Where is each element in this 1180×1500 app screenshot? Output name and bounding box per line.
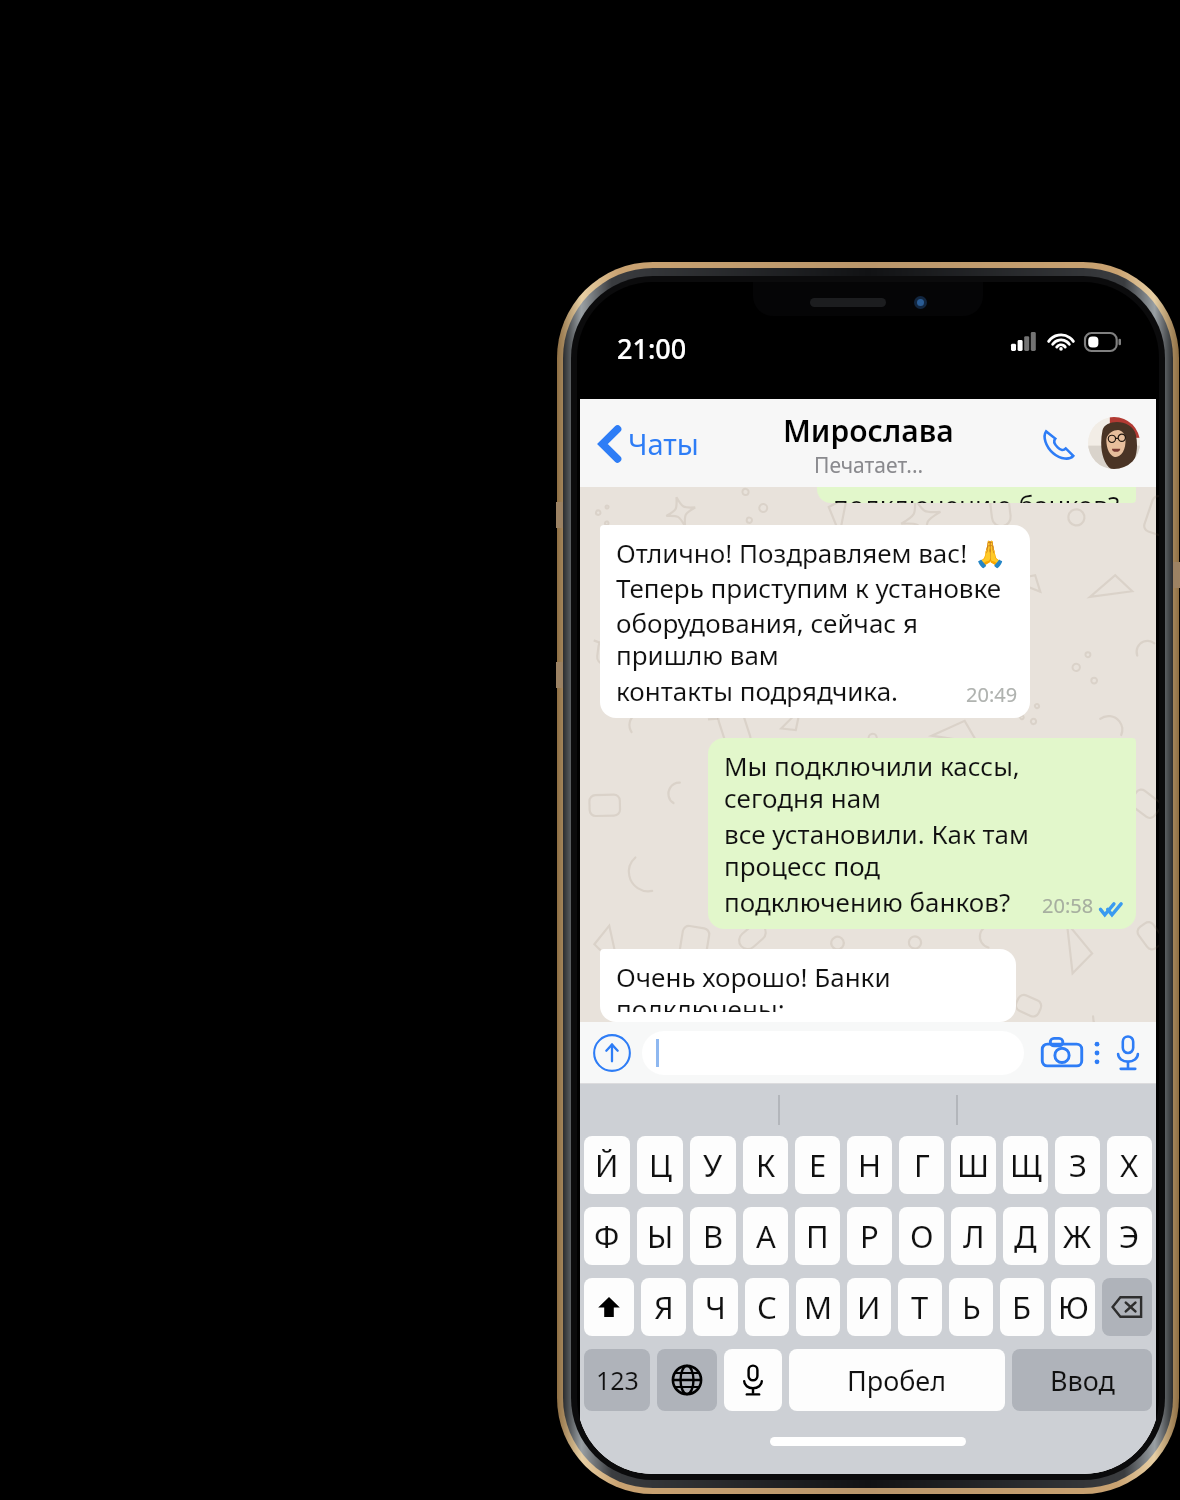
button[interactable]: Voice message	[1112, 1032, 1144, 1074]
button[interactable]: Чаты	[594, 416, 705, 471]
staticText: 123	[596, 1363, 639, 1397]
button[interactable]: Р	[847, 1207, 892, 1265]
staticText: Ввод	[1050, 1362, 1115, 1399]
button[interactable]: Л	[951, 1207, 996, 1265]
staticText: Е	[809, 1144, 827, 1186]
button[interactable]: Т	[898, 1278, 942, 1336]
staticText: Ш	[957, 1144, 990, 1186]
staticText: 20:49	[966, 681, 1018, 708]
button[interactable]: М	[796, 1278, 840, 1336]
button[interactable]: Contact avatar	[1088, 417, 1140, 469]
staticText: Т	[911, 1286, 929, 1328]
staticText: Ф	[594, 1215, 620, 1257]
button[interactable]: подключению банков?	[817, 487, 1136, 503]
button[interactable]: Мы подключили кассы, сегодня нам	[708, 738, 1136, 929]
staticText: Г	[914, 1144, 930, 1186]
staticText: Н	[858, 1144, 882, 1186]
staticText: Очень хорошо! Банки подключены:	[616, 959, 1004, 1012]
button[interactable]: Г	[899, 1136, 944, 1194]
button[interactable]: Ы	[637, 1207, 683, 1265]
staticText: Ж	[1063, 1215, 1092, 1257]
staticText: Б	[1012, 1286, 1032, 1328]
staticText: Ь	[962, 1286, 981, 1328]
button[interactable]: З	[1055, 1136, 1100, 1194]
staticText: Ы	[647, 1215, 674, 1257]
staticText: Щ	[1010, 1144, 1042, 1186]
staticText: Чаты	[628, 424, 699, 463]
button[interactable]: Н	[847, 1136, 892, 1194]
staticText: все установили. Как там процесс под	[724, 816, 1124, 884]
staticText: Пробел	[847, 1362, 947, 1399]
staticText: Й	[595, 1144, 619, 1186]
button[interactable]: Б	[1000, 1278, 1044, 1336]
button[interactable]: Ш	[951, 1136, 996, 1194]
button[interactable]: В	[690, 1207, 736, 1265]
button[interactable]: Пробел	[789, 1349, 1005, 1411]
button[interactable]: Й	[584, 1136, 630, 1194]
button[interactable]: Ч	[693, 1278, 738, 1336]
staticText: оборудования, сейчас я пришлю вам	[616, 605, 1018, 673]
staticText: Л	[963, 1215, 985, 1257]
button[interactable]: Backspace	[1102, 1278, 1152, 1336]
staticText: Мирослава	[783, 410, 954, 451]
button[interactable]: Э	[1107, 1207, 1152, 1265]
button[interactable]: К	[743, 1136, 788, 1194]
staticText: А	[756, 1215, 776, 1257]
button[interactable]: И	[847, 1278, 891, 1336]
staticText: Я	[654, 1286, 674, 1328]
staticText: Х	[1120, 1144, 1139, 1186]
button[interactable]: Я	[641, 1278, 686, 1336]
staticText: Ю	[1058, 1286, 1089, 1328]
button[interactable]: Х	[1107, 1136, 1152, 1194]
button[interactable]: Щ	[1003, 1136, 1048, 1194]
button[interactable]	[642, 1031, 1024, 1075]
staticText: Ч	[705, 1286, 726, 1328]
staticText: Печатает...	[814, 451, 924, 480]
button[interactable]: Call	[1034, 418, 1084, 468]
button[interactable]: У	[690, 1136, 736, 1194]
button[interactable]: Dictation	[724, 1349, 782, 1411]
staticText: Отлично! Поздравляем вас! 🙏	[616, 535, 1007, 570]
button[interactable]: Change keyboard	[657, 1349, 717, 1411]
staticText: И	[857, 1286, 881, 1328]
staticText: Э	[1119, 1215, 1140, 1257]
button[interactable]: Д	[1003, 1207, 1048, 1265]
staticText: Ц	[649, 1144, 672, 1186]
button[interactable]: Ф	[584, 1207, 630, 1265]
button[interactable]: Shift	[584, 1278, 634, 1336]
staticText: подключению банков?	[833, 487, 1120, 503]
button[interactable]: 123	[584, 1349, 650, 1411]
staticText: З	[1069, 1144, 1087, 1186]
staticText: У	[703, 1144, 723, 1186]
button[interactable]: П	[795, 1207, 840, 1265]
staticText: К	[756, 1144, 776, 1186]
staticText: Д	[1014, 1215, 1037, 1257]
button[interactable]: Очень хорошо! Банки подключены:	[600, 949, 1016, 1022]
button[interactable]: Ю	[1051, 1278, 1095, 1336]
button[interactable]: Ввод	[1012, 1349, 1152, 1411]
button[interactable]: Attach	[592, 1033, 632, 1073]
button[interactable]: С	[745, 1278, 789, 1336]
staticText: подключению банков?	[724, 884, 1011, 919]
button[interactable]: Ц	[637, 1136, 683, 1194]
staticText: П	[806, 1215, 829, 1257]
staticText: Р	[860, 1215, 879, 1257]
staticText: 20:58	[1042, 892, 1094, 919]
button[interactable]: Camera	[1038, 1033, 1086, 1073]
button[interactable]: Ж	[1055, 1207, 1100, 1265]
staticText: Теперь приступим к установке	[616, 570, 1002, 605]
staticText: В	[703, 1215, 724, 1257]
staticText: С	[757, 1286, 777, 1328]
button[interactable]: Е	[795, 1136, 840, 1194]
staticText: контакты подрядчика.	[616, 673, 899, 708]
button[interactable]: Отлично! Поздравляем вас! 🙏	[600, 525, 1030, 718]
staticText: О	[910, 1215, 934, 1257]
button[interactable]: А	[743, 1207, 788, 1265]
button[interactable]: О	[899, 1207, 944, 1265]
button[interactable]: Ь	[949, 1278, 993, 1336]
staticText: 21:00	[617, 330, 687, 367]
staticText: М	[804, 1286, 833, 1328]
staticText: Мы подключили кассы, сегодня нам	[724, 748, 1124, 816]
